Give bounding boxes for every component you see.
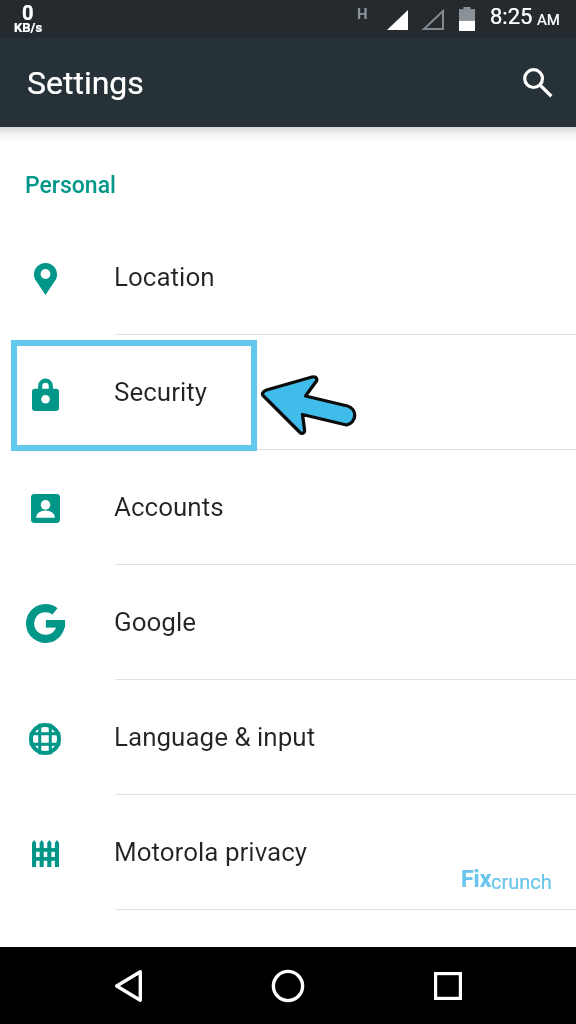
staticText: Accounts <box>114 492 224 522</box>
staticText: Fix <box>461 866 492 893</box>
staticText: KB/s <box>14 20 43 35</box>
staticText: Google <box>114 607 197 637</box>
staticText: Security <box>114 377 208 407</box>
button[interactable]: Recents <box>416 954 480 1018</box>
button[interactable]: Motorola privacy <box>0 795 576 910</box>
staticText: AM <box>537 11 560 29</box>
button[interactable]: Accounts <box>0 450 576 565</box>
button[interactable]: Google <box>0 565 576 680</box>
staticText: Language & input <box>114 722 316 752</box>
staticText: Location <box>114 262 215 292</box>
staticText: 0 <box>22 1 34 24</box>
staticText: Personal <box>25 172 116 199</box>
staticText: Settings <box>27 64 144 102</box>
button[interactable]: Back <box>96 954 160 1018</box>
staticText: H <box>357 5 368 23</box>
button[interactable]: Home <box>256 954 320 1018</box>
staticText: 8:25 <box>490 4 533 30</box>
staticText: crunch <box>491 870 552 893</box>
button[interactable]: Location <box>0 220 576 335</box>
staticText: Motorola privacy <box>114 837 308 867</box>
button[interactable]: Language & input <box>0 680 576 795</box>
button[interactable]: Security <box>0 335 576 450</box>
button[interactable]: Search <box>506 55 562 111</box>
